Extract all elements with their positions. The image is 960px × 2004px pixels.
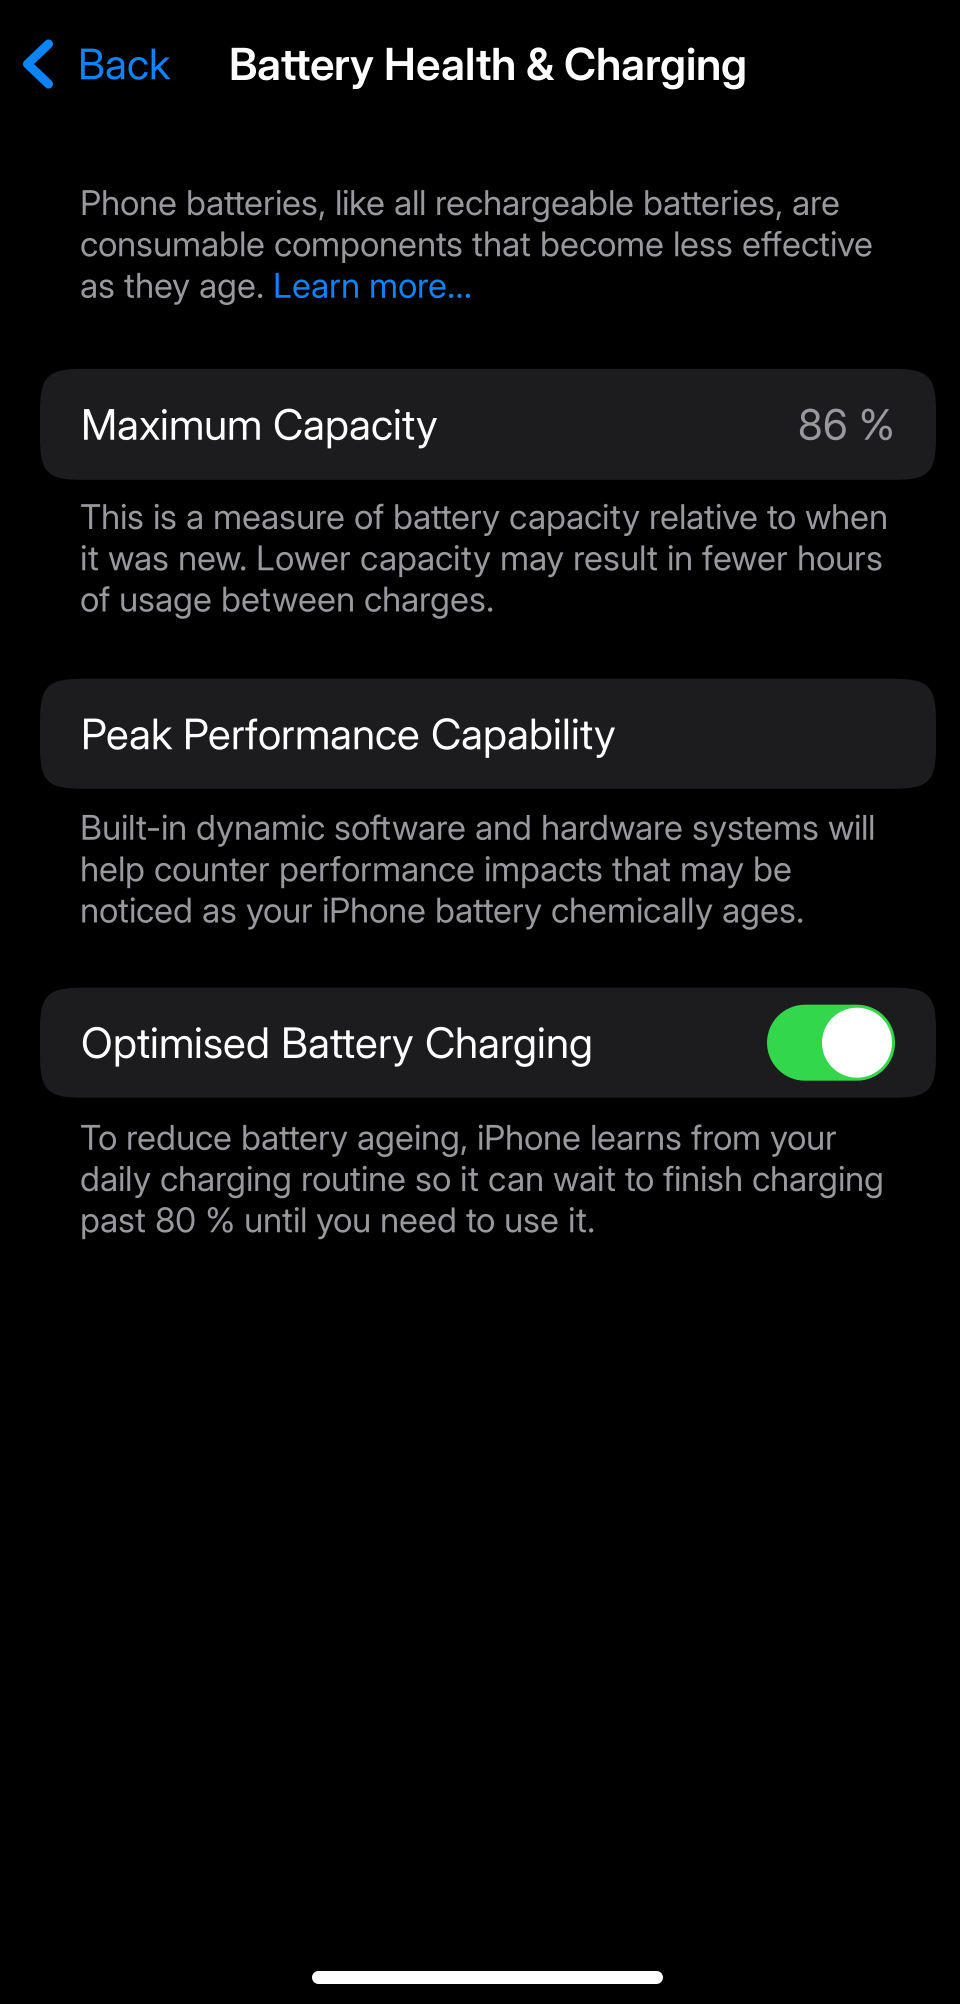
staticText: consumable components that become less e… (80, 223, 873, 265)
staticText: 86 % (798, 399, 895, 450)
button[interactable]: Peak Performance Capability (0, 679, 936, 789)
staticText: Maximum Capacity (81, 399, 438, 450)
staticText: Learn more… (273, 265, 472, 306)
staticText: as they age. (80, 265, 273, 306)
staticText: Back (78, 38, 170, 89)
button[interactable]: Maximum Capacity (0, 369, 936, 480)
button[interactable]: Learn more… (273, 265, 472, 306)
staticText: Phone batteries, like all rechargeable b… (80, 182, 840, 223)
staticText: To reduce battery ageing, iPhone learns … (80, 1117, 884, 1241)
staticText: Peak Performance Capability (81, 708, 616, 759)
button[interactable]: Optimised Battery Charging (0, 988, 936, 1098)
staticText: Built-in dynamic software and hardware s… (80, 807, 875, 931)
staticText: Battery Health & Charging (229, 37, 747, 91)
button[interactable]: Back (0, 0, 184, 128)
staticText: Optimised Battery Charging (81, 1017, 593, 1068)
staticText: This is a measure of battery capacity re… (80, 496, 888, 620)
